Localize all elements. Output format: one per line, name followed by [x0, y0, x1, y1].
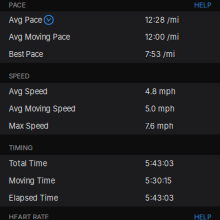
staticText: 5:43:03: [145, 193, 174, 202]
button[interactable]: Avg Moving Pace: [0, 28, 220, 46]
button[interactable]: Avg Pace: [0, 11, 220, 28]
staticText: Elapsed Time: [9, 193, 58, 202]
staticText: 7.6 mph: [145, 121, 173, 130]
staticText: 12:00 /mi: [145, 32, 179, 42]
staticText: HELP: [194, 1, 211, 9]
staticText: HEART RATE: [9, 213, 49, 220]
staticText: SPEED: [9, 72, 30, 80]
button[interactable]: Best Pace: [0, 46, 220, 63]
staticText: Total Time: [9, 159, 47, 168]
staticText: 5.0 mph: [145, 104, 174, 113]
staticText: TIMING: [9, 144, 33, 152]
staticText: Max Speed: [9, 121, 49, 130]
staticText: Avg Speed: [9, 87, 48, 96]
button[interactable]: Max Speed: [0, 117, 220, 134]
button[interactable]: Elapsed Time: [0, 189, 220, 206]
button[interactable]: Total Time: [0, 155, 220, 172]
staticText: Moving Time: [9, 176, 55, 185]
button[interactable]: Moving Time: [0, 172, 220, 189]
staticText: Avg Moving Speed: [9, 104, 76, 113]
staticText: 7:53 /mi: [145, 50, 175, 59]
staticText: 4.8 mph: [145, 87, 175, 96]
staticText: Best Pace: [9, 50, 43, 59]
staticText: PACE: [9, 1, 26, 9]
button[interactable]: Avg Speed: [0, 83, 220, 100]
staticText: HELP: [194, 213, 211, 220]
button[interactable]: HELP: [194, 1, 211, 9]
staticText: 12:28 /mi: [145, 15, 179, 24]
staticText: 5:43:03: [145, 159, 174, 168]
button[interactable]: HELP: [194, 213, 211, 220]
staticText: Avg Moving Pace: [9, 32, 70, 42]
button[interactable]: Avg Moving Speed: [0, 100, 220, 117]
staticText: Avg Pace: [9, 15, 42, 24]
staticText: 5:30:15: [145, 176, 172, 185]
